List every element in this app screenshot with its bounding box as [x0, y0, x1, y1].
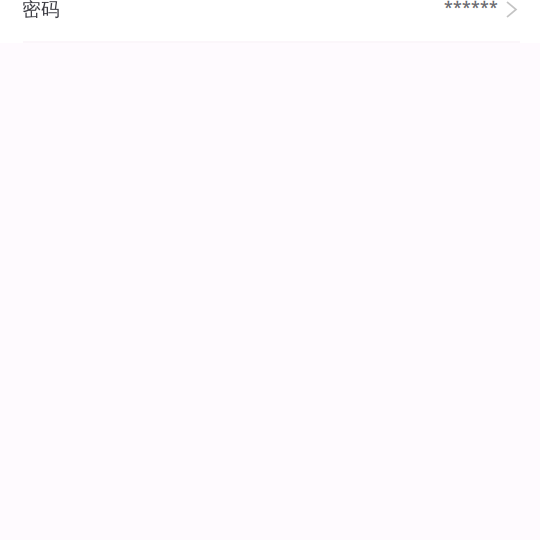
button[interactable]: 密码 [0, 0, 540, 41]
staticText: 密码 [22, 0, 60, 21]
staticText: ****** [444, 0, 498, 17]
